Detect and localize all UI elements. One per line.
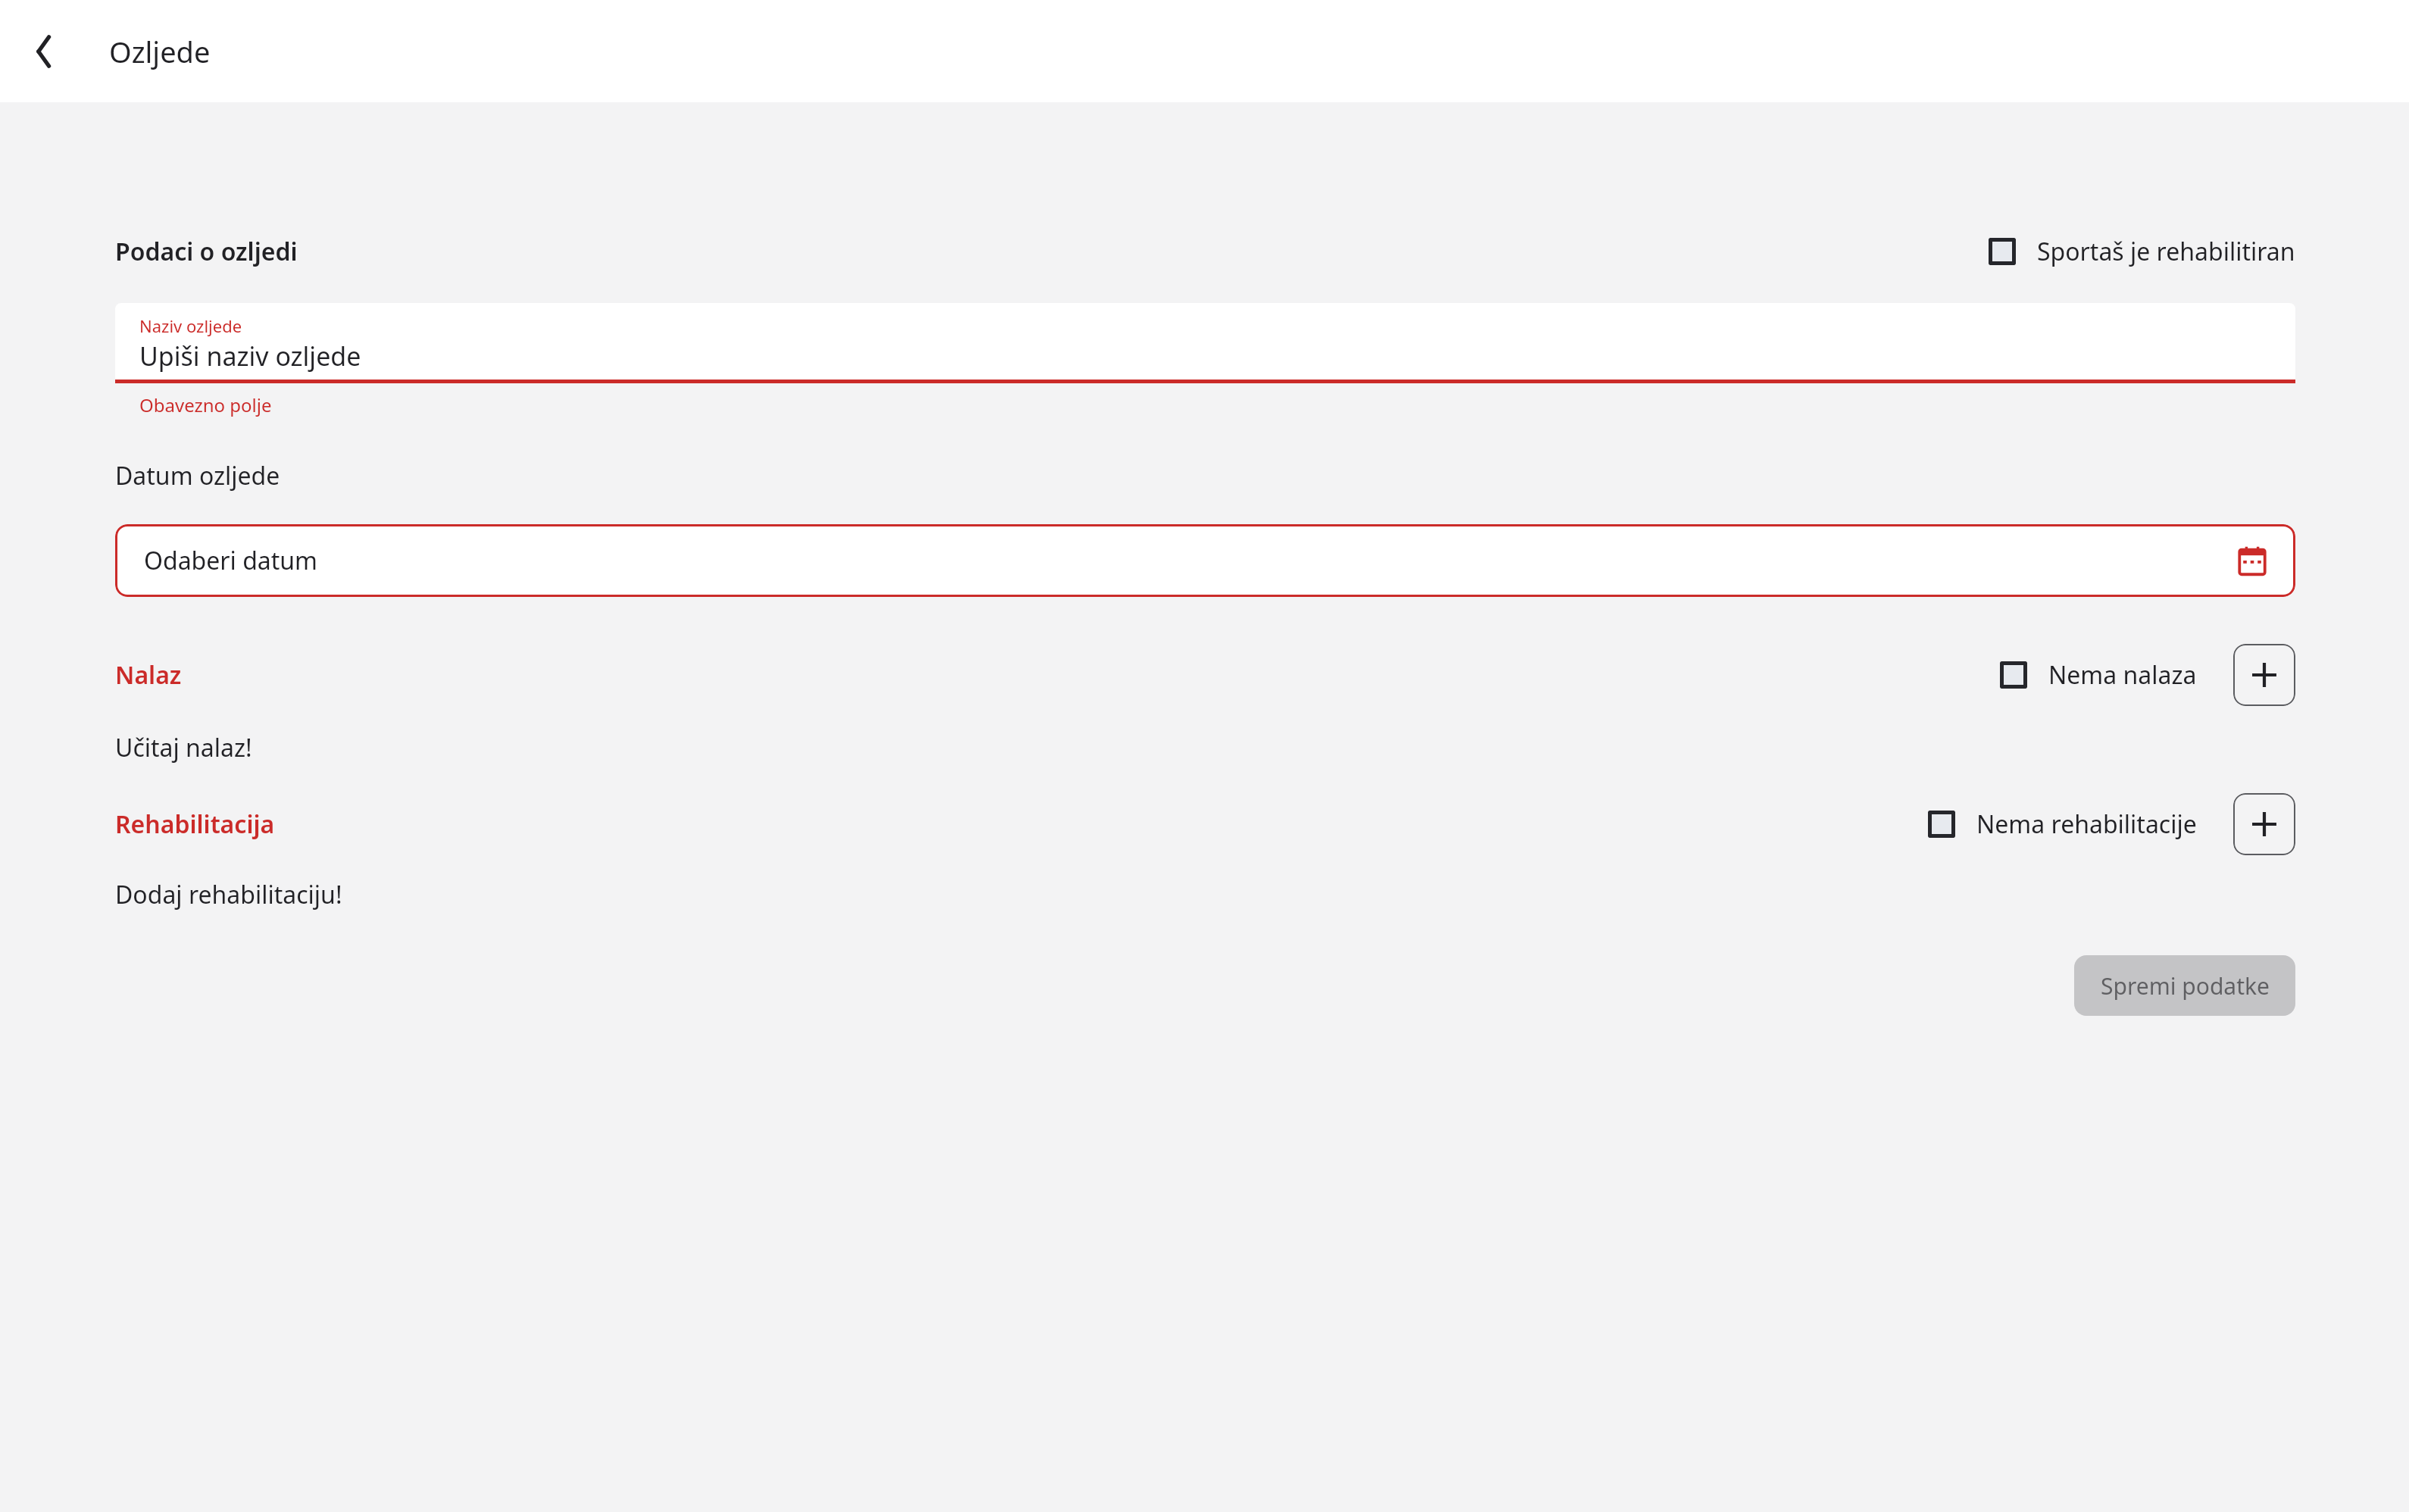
staticText: Upiši naziv ozljede (139, 339, 361, 373)
button[interactable]: Add (2233, 793, 2295, 855)
button[interactable]: Spremi podatke (2074, 955, 2295, 1016)
button[interactable]: Back (18, 26, 70, 77)
staticText: Spremi podatke (2101, 970, 2270, 1001)
staticText: Podaci o ozljedi (115, 235, 298, 268)
button[interactable]: Nema rehabilitacije (1928, 808, 2197, 841)
button[interactable]: Nema nalaza (2000, 658, 2197, 692)
staticText: Obavezno polje (139, 392, 272, 417)
button[interactable]: Naziv ozljede (115, 303, 2295, 417)
staticText: Sportaš je rehabilitiran (2037, 235, 2295, 268)
staticText: Nema rehabilitacije (1976, 808, 2197, 841)
button[interactable]: Učitaj nalaz! (115, 731, 252, 764)
staticText: Ozljede (109, 32, 211, 71)
staticText: Odaberi datum (144, 544, 318, 577)
button[interactable] (1928, 811, 1955, 838)
button[interactable] (1989, 238, 2016, 265)
staticText: Nema nalaza (2048, 658, 2197, 692)
button[interactable]: Sportaš je rehabilitiran (1989, 235, 2295, 268)
staticText: Datum ozljede (115, 459, 280, 492)
button[interactable]: Add (2233, 644, 2295, 706)
staticText: Nalaz (115, 658, 182, 692)
staticText: Rehabilitacija (115, 808, 275, 841)
staticText: Naziv ozljede (139, 314, 242, 337)
button[interactable]: Odaberi datum (115, 524, 2295, 597)
button[interactable] (2000, 661, 2027, 689)
button[interactable]: Dodaj rehabilitaciju! (115, 878, 342, 911)
